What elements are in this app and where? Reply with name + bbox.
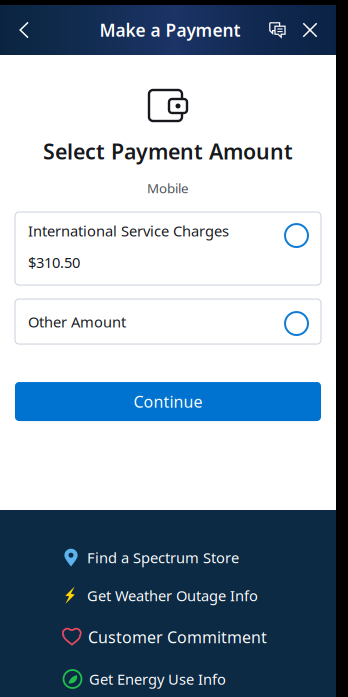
staticText: International Service Charges: [28, 221, 229, 240]
staticText: $310.50: [28, 252, 80, 272]
button[interactable]: Other Amount: [15, 299, 321, 344]
button[interactable]: Get Energy Use Info: [0, 658, 336, 697]
staticText: Find a Spectrum Store: [87, 548, 239, 567]
staticText: Select Payment Amount: [43, 137, 293, 165]
button[interactable]: International Service Charges: [15, 212, 321, 285]
button[interactable]: Continue: [15, 382, 321, 421]
button[interactable]: Back: [3, 5, 45, 55]
staticText: Get Weather Outage Info: [87, 586, 258, 605]
button[interactable]: Get Weather Outage Info: [0, 575, 336, 616]
button[interactable]: Close: [292, 5, 334, 55]
button[interactable]: Customer Commitment: [0, 616, 336, 658]
button[interactable]: Find a Spectrum Store: [0, 536, 336, 575]
staticText: Make a Payment: [99, 18, 240, 41]
button[interactable]: Chat: [246, 5, 292, 55]
staticText: Get Energy Use Info: [89, 669, 226, 689]
staticText: Mobile: [147, 179, 189, 197]
staticText: Customer Commitment: [88, 626, 267, 648]
staticText: Continue: [133, 391, 202, 412]
staticText: Other Amount: [28, 312, 126, 331]
